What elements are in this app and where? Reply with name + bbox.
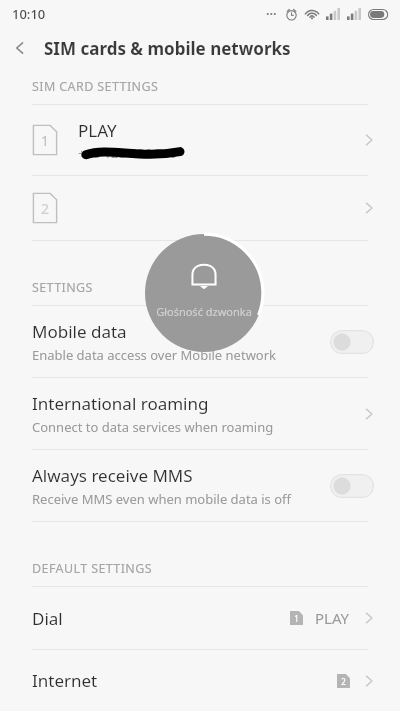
button[interactable]: Dial xyxy=(0,587,400,649)
staticText: DEFAULT SETTINGS xyxy=(32,560,153,577)
staticText: 10:10 xyxy=(12,5,46,23)
button[interactable]: Internet xyxy=(0,650,400,711)
staticText: Always receive MMS xyxy=(32,464,193,487)
staticText: Connect to data services when roaming xyxy=(32,418,274,436)
button[interactable]: 1 xyxy=(0,105,400,175)
staticText: 1 xyxy=(294,613,299,624)
staticText: Receive MMS even when mobile data is off xyxy=(32,490,292,508)
staticText: 1 xyxy=(41,131,50,150)
staticText: PLAY xyxy=(315,608,350,628)
button[interactable]: Always receive MMS xyxy=(0,450,400,521)
button[interactable]: Always receive MMS toggle xyxy=(330,474,374,498)
staticText: SIM CARD SETTINGS xyxy=(32,78,159,95)
staticText: PLAY xyxy=(78,119,117,142)
staticText: 2 xyxy=(341,676,346,687)
staticText: Dial xyxy=(32,607,290,630)
staticText: SIM cards & mobile networks xyxy=(44,37,291,60)
staticText: 2 xyxy=(41,199,50,218)
staticText: International roaming xyxy=(32,392,209,415)
button[interactable]: Mobile data toggle xyxy=(330,330,374,354)
staticText: +48 123 456 789 xyxy=(78,144,178,162)
staticText: Internet xyxy=(32,669,337,692)
staticText: SETTINGS xyxy=(32,279,93,296)
button[interactable]: International roaming xyxy=(0,378,400,449)
button[interactable]: Mobile data xyxy=(0,306,400,377)
button[interactable]: 2 xyxy=(0,176,400,240)
staticText: Enable data access over Mobile network xyxy=(32,346,277,364)
staticText: Mobile data xyxy=(32,320,127,343)
button[interactable]: Back xyxy=(0,28,40,68)
staticText: Głośność dzwonka xyxy=(156,304,252,319)
